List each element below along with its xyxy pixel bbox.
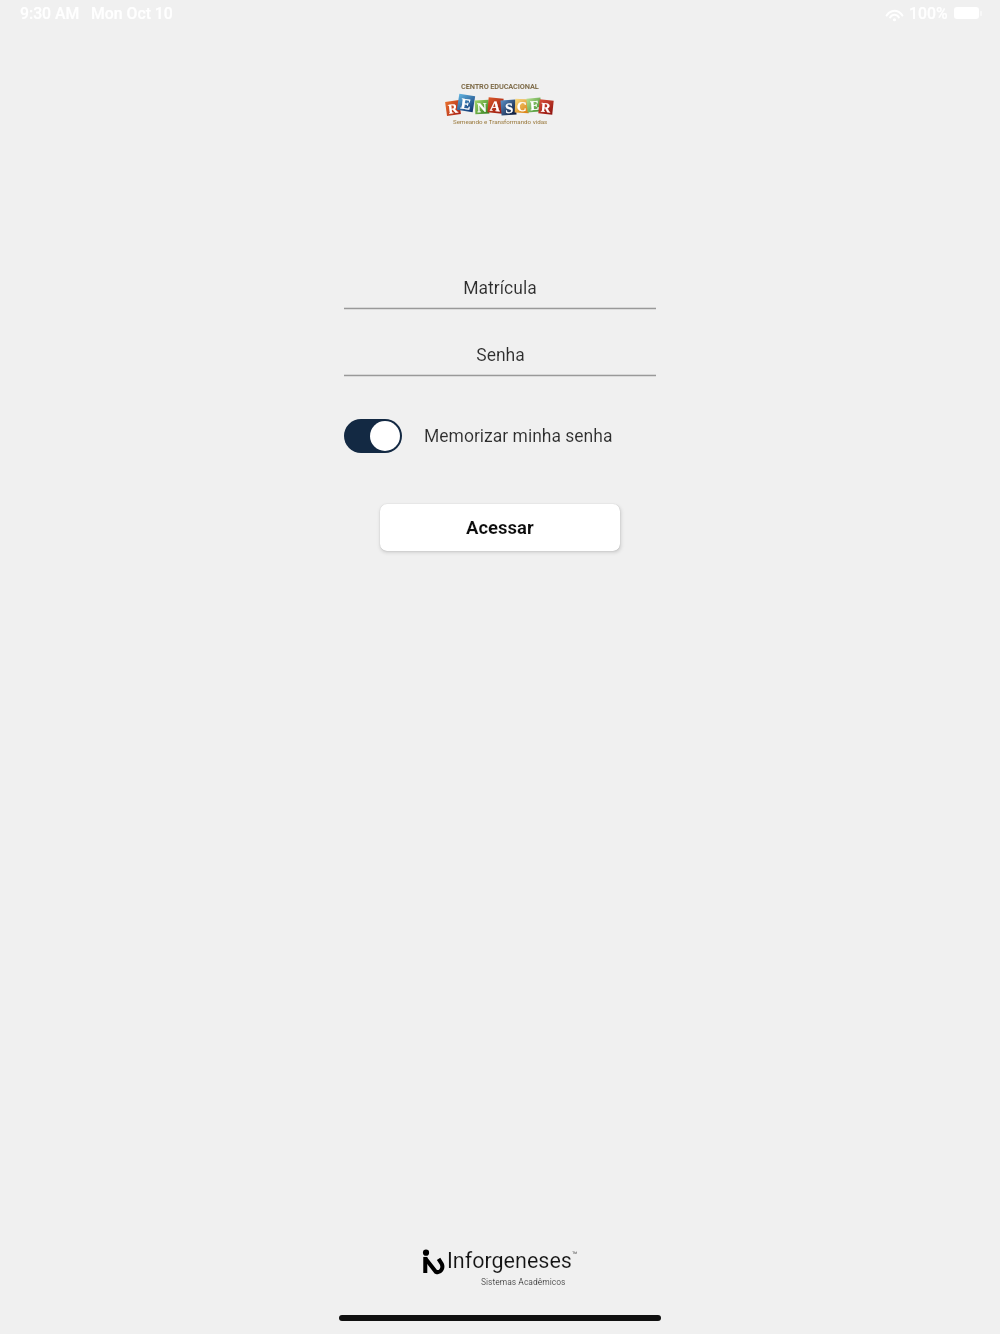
staticText: Senha bbox=[476, 345, 525, 366]
button[interactable]: Matrícula bbox=[344, 270, 656, 310]
button[interactable]: Memorizar minha senha bbox=[344, 419, 656, 453]
staticText: Mon Oct 10 bbox=[91, 4, 173, 23]
staticText: Inforgeneses bbox=[447, 1248, 572, 1273]
button[interactable]: Senha bbox=[344, 337, 656, 377]
staticText: CENTRO EDUCACIONAL bbox=[461, 82, 539, 91]
staticText: E bbox=[460, 94, 473, 112]
staticText: ™ bbox=[572, 1250, 578, 1261]
other: Wi-Fi signal bbox=[885, 7, 904, 20]
staticText: 100% bbox=[909, 4, 948, 23]
staticText: Sistemas Acadêmicos bbox=[481, 1277, 566, 1287]
staticText: 9:30 AM bbox=[20, 4, 80, 23]
staticText: E bbox=[529, 98, 540, 112]
button[interactable]: Acessar bbox=[380, 504, 620, 551]
staticText: N bbox=[477, 100, 487, 114]
staticText: C bbox=[517, 99, 527, 113]
staticText: R bbox=[540, 99, 552, 114]
other: Battery full bbox=[954, 7, 982, 19]
staticText: Semeando e Transformando vidas bbox=[453, 118, 548, 125]
staticText: Acessar bbox=[466, 517, 534, 539]
staticText: S bbox=[504, 100, 513, 115]
staticText: Memorizar minha senha bbox=[424, 426, 613, 447]
staticText: Matrícula bbox=[463, 278, 537, 299]
other: Inforgeneses logo bbox=[422, 1249, 445, 1273]
staticText: A bbox=[489, 97, 502, 113]
staticText: R bbox=[447, 100, 459, 116]
